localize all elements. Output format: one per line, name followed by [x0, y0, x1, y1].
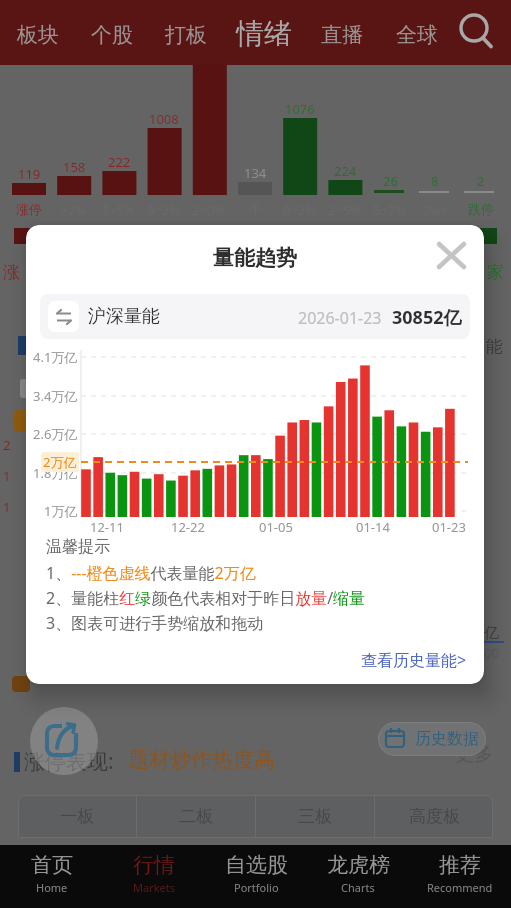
- staticText: 打板: [165, 22, 207, 48]
- staticText: Charts: [341, 880, 375, 895]
- staticText: 01-05: [259, 518, 293, 536]
- button[interactable]: 行情: [103, 845, 205, 908]
- button[interactable]: [301, 0, 376, 65]
- staticText: 2: [3, 436, 11, 454]
- staticText: 高度板: [409, 806, 460, 827]
- staticText: 4.1万亿: [33, 348, 78, 366]
- staticText: 01-14: [356, 518, 390, 536]
- staticText: 量能趋势: [213, 245, 297, 271]
- staticText: 历史数据: [415, 729, 479, 749]
- staticText: 情绪: [236, 16, 292, 51]
- staticText: 158: [63, 158, 86, 176]
- button[interactable]: 自选股: [205, 845, 307, 908]
- staticText: 3、图表可进行手势缩放和拖动: [46, 612, 264, 634]
- button[interactable]: 历史数据: [378, 722, 486, 756]
- staticText: 1万亿: [44, 502, 78, 520]
- button[interactable]: [151, 0, 226, 65]
- staticText: 224: [334, 162, 357, 180]
- staticText: 12-11: [90, 518, 124, 536]
- staticText: 龙虎榜: [327, 852, 390, 878]
- staticText: 134: [244, 164, 267, 182]
- button[interactable]: 沪深量能: [40, 294, 470, 339]
- button[interactable]: [30, 707, 98, 775]
- button[interactable]: 龙虎榜: [307, 845, 409, 908]
- staticText: 2、量能柱红绿颜色代表相对于昨日放量/缩量: [46, 587, 366, 609]
- staticText: 119: [18, 165, 41, 183]
- staticText: 温馨提示: [46, 537, 110, 557]
- staticText: 题材炒作热度高: [128, 747, 275, 773]
- staticText: 涨停表现:: [24, 747, 114, 776]
- staticText: Markets: [133, 880, 176, 895]
- staticText: 自选股: [225, 852, 288, 878]
- staticText: 2.6万亿: [33, 425, 78, 443]
- staticText: 涨停: [16, 201, 42, 217]
- button[interactable]: [376, 0, 451, 65]
- staticText: 跌停: [468, 201, 494, 217]
- button[interactable]: [226, 0, 301, 65]
- staticText: 8: [431, 172, 439, 190]
- button[interactable]: [76, 0, 151, 65]
- staticText: 2026-01-23: [298, 307, 382, 329]
- staticText: 1: [3, 498, 11, 516]
- staticText: Home: [36, 880, 68, 895]
- staticText: 1076: [285, 100, 315, 118]
- button[interactable]: [451, 0, 511, 65]
- staticText: 222: [108, 153, 131, 171]
- staticText: 全球: [396, 22, 438, 48]
- button[interactable]: 三板: [256, 795, 374, 838]
- staticText: Recommend: [427, 880, 493, 895]
- button[interactable]: 高度板: [375, 795, 493, 838]
- staticText: 2: [477, 172, 485, 190]
- staticText: 26: [383, 172, 398, 190]
- staticText: 三板: [298, 806, 332, 827]
- staticText: 涨: [3, 262, 20, 283]
- button[interactable]: 一板: [18, 795, 136, 838]
- button[interactable]: 二板: [137, 795, 255, 838]
- staticText: 3.4万亿: [33, 387, 78, 405]
- staticText: 板块: [17, 22, 59, 48]
- button[interactable]: 查看历史量能>: [297, 649, 467, 679]
- staticText: 12-22: [171, 518, 205, 536]
- staticText: 个股: [91, 22, 133, 48]
- staticText: 1008: [149, 110, 179, 128]
- staticText: 行情: [133, 852, 175, 878]
- staticText: 推荐: [439, 852, 481, 878]
- staticText: 1: [3, 467, 11, 485]
- staticText: 更多: [455, 742, 493, 766]
- staticText: 亿: [484, 624, 499, 643]
- staticText: Portfolio: [234, 880, 279, 895]
- staticText: 00: [484, 644, 499, 662]
- button[interactable]: 首页: [0, 845, 103, 908]
- staticText: 2万亿: [43, 453, 77, 471]
- staticText: 一板: [60, 806, 94, 827]
- staticText: 直播: [321, 22, 363, 48]
- staticText: 30852亿: [392, 305, 462, 330]
- staticText: 01-23: [432, 518, 466, 536]
- staticText: 二板: [179, 806, 213, 827]
- button[interactable]: [0, 0, 76, 65]
- staticText: 1、---橙色虚线代表量能2万亿: [46, 562, 256, 584]
- staticText: 首页: [31, 852, 73, 878]
- button[interactable]: 推荐: [409, 845, 511, 908]
- button[interactable]: [429, 234, 484, 289]
- staticText: 沪深量能: [88, 305, 160, 328]
- staticText: 家: [487, 262, 504, 283]
- staticText: 1.8万亿: [33, 464, 78, 482]
- staticText: 查看历史量能>: [361, 649, 467, 671]
- staticText: 能: [486, 336, 503, 357]
